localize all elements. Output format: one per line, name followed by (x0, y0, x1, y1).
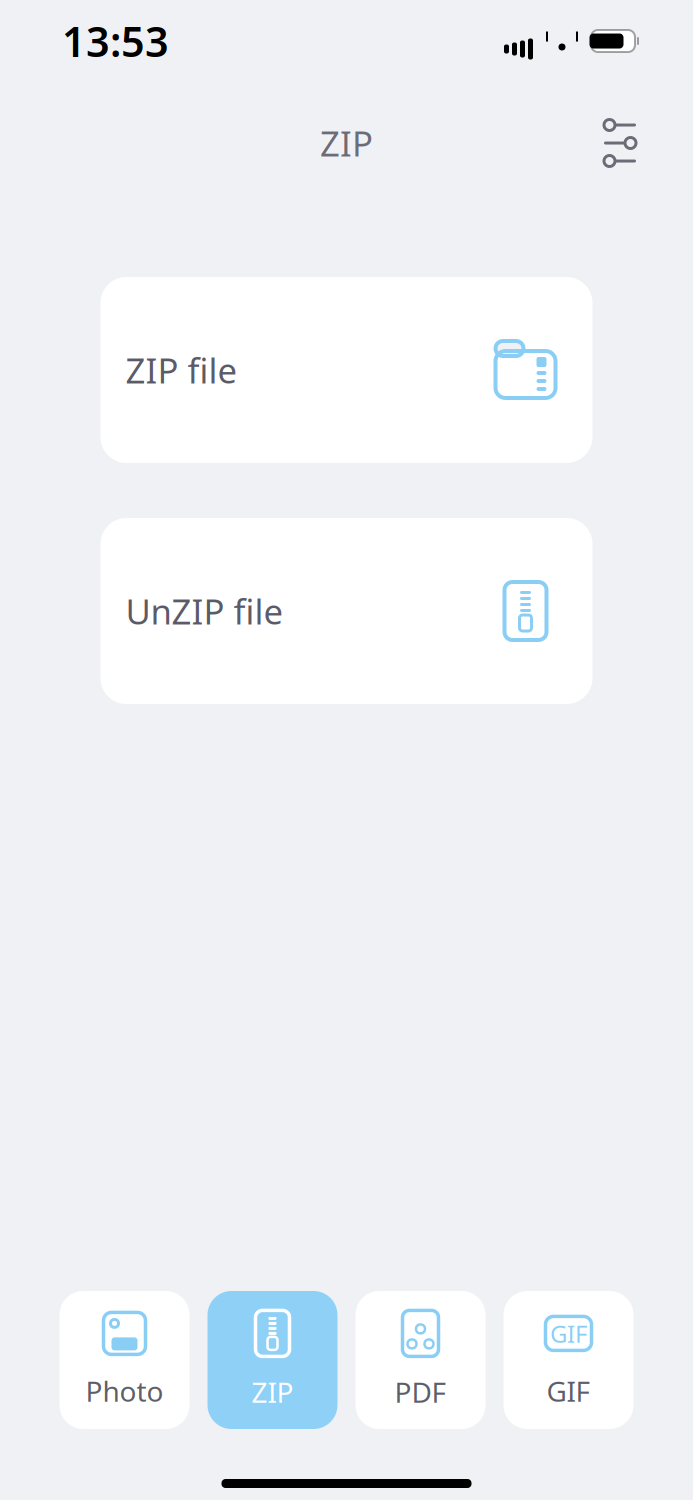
button[interactable]: ZIP file (100, 277, 592, 463)
button[interactable]: Settings (587, 110, 653, 176)
staticText: GIF (550, 1317, 587, 1349)
button[interactable]: Photo (59, 1291, 189, 1429)
staticText: ZIP (320, 120, 373, 166)
button[interactable]: ZIP (207, 1291, 337, 1429)
staticText: Photo (85, 1372, 163, 1410)
button[interactable]: GIF (503, 1291, 633, 1429)
button[interactable]: UnZIP file (100, 518, 592, 704)
staticText: GIF (546, 1372, 590, 1410)
staticText: ZIP (251, 1373, 293, 1411)
staticText: PDF (394, 1373, 446, 1411)
staticText: UnZIP file (125, 588, 283, 634)
staticText: 13:53 (62, 14, 169, 68)
button[interactable]: PDF (355, 1291, 485, 1429)
staticText: ZIP file (125, 347, 237, 393)
